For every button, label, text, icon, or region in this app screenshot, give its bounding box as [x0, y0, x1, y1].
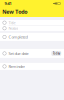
staticText: Set due date [8, 51, 28, 56]
staticText: New Todo [2, 8, 27, 15]
button[interactable]: Completed [0, 33, 64, 41]
button[interactable]: Set due date [0, 49, 64, 58]
button[interactable]: Notes [0, 26, 64, 31]
staticText: Title [8, 20, 15, 25]
staticText: Today [53, 52, 60, 55]
staticText: Reminder [8, 64, 25, 69]
staticText: 9:41 [4, 1, 11, 6]
staticText: Completed [8, 34, 27, 40]
button[interactable]: Reminder [0, 63, 64, 70]
button[interactable]: Title [0, 20, 64, 25]
staticText: Notes [8, 26, 18, 31]
